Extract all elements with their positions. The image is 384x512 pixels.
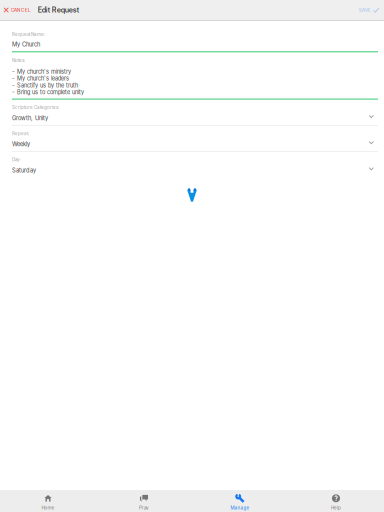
button[interactable]: - My church's ministry xyxy=(12,68,378,95)
staticText: Edit Request xyxy=(38,6,79,14)
staticText: Weekly xyxy=(12,141,30,148)
staticText: - Bring us to complete unity xyxy=(12,89,84,95)
staticText: Pray xyxy=(139,505,149,511)
staticText: - Sanctify us by the truth xyxy=(12,82,78,89)
button[interactable]: CANCEL xyxy=(0,0,34,20)
button[interactable]: Home xyxy=(0,490,96,512)
staticText: Request Name: xyxy=(12,31,45,37)
button[interactable]: Pray xyxy=(96,490,192,512)
staticText: Notes: xyxy=(12,58,25,63)
staticText: Repeat: xyxy=(12,131,29,136)
staticText: Manage xyxy=(230,505,249,511)
button[interactable]: Day: xyxy=(12,152,378,177)
button[interactable]: My Church xyxy=(12,41,378,48)
staticText: SAVE xyxy=(359,7,371,13)
staticText: Saturday xyxy=(12,167,36,174)
button[interactable]: Scripture Categories: xyxy=(12,100,378,125)
staticText: My Church xyxy=(12,41,40,48)
button[interactable]: Manage xyxy=(192,490,288,512)
button[interactable]: Help xyxy=(288,490,384,512)
staticText: - My church's ministry xyxy=(12,68,71,75)
button[interactable]: SAVE xyxy=(356,0,384,20)
staticText: Scripture Categories: xyxy=(12,105,59,110)
staticText: - My church's leaders xyxy=(12,75,69,82)
staticText: Day: xyxy=(12,157,21,162)
staticText: Help xyxy=(331,505,341,511)
button[interactable]: Repeat: xyxy=(12,126,378,151)
staticText: CANCEL xyxy=(11,7,31,13)
staticText: Home xyxy=(41,505,54,511)
staticText: Growth, Unity xyxy=(12,115,48,121)
